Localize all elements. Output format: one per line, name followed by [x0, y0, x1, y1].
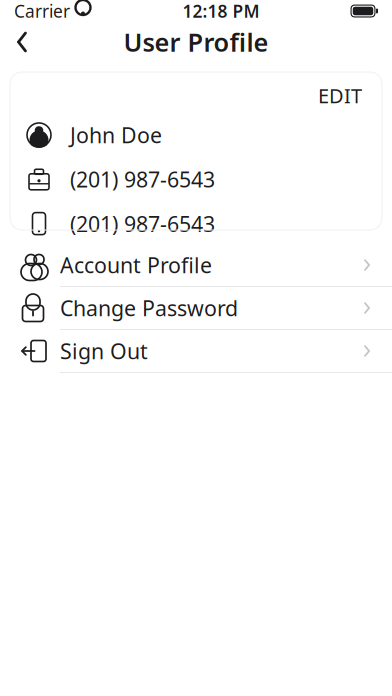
staticText: Sign Out: [60, 337, 148, 365]
staticText: (201) 987-6543: [70, 165, 215, 193]
button[interactable]: Back: [0, 22, 44, 62]
staticText: User Profile: [123, 25, 268, 59]
button[interactable]: EDIT: [312, 78, 368, 113]
button[interactable]: Sign Out: [0, 330, 392, 372]
staticText: 12:18 PM: [182, 0, 259, 22]
button[interactable]: Change Password: [0, 287, 392, 329]
staticText: Change Password: [60, 294, 238, 322]
button[interactable]: Account Profile: [0, 244, 392, 286]
staticText: EDIT: [318, 82, 362, 109]
staticText: (201) 987-6543: [70, 209, 215, 238]
staticText: Carrier: [14, 0, 70, 22]
staticText: Account Profile: [60, 251, 212, 279]
staticText: John Doe: [70, 121, 162, 149]
